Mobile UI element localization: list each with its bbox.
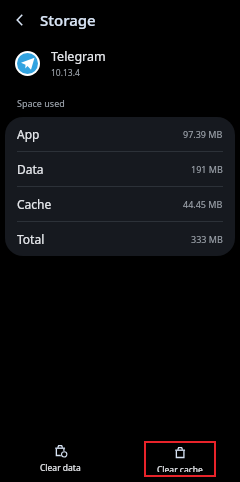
staticText: 97.39 MB bbox=[183, 128, 223, 140]
button[interactable]: Data bbox=[5, 152, 235, 186]
staticText: 333 MB bbox=[191, 233, 223, 245]
staticText: 10.13.4 bbox=[51, 67, 80, 79]
staticText: Total bbox=[17, 231, 45, 247]
staticText: Clear cache bbox=[157, 464, 203, 472]
staticText: Clear data bbox=[40, 462, 81, 474]
button[interactable]: Telegram bbox=[0, 40, 240, 86]
button[interactable]: App bbox=[5, 117, 235, 151]
button[interactable]: Clear cache bbox=[146, 443, 214, 475]
staticText: App bbox=[17, 126, 40, 142]
staticText: Storage bbox=[40, 10, 96, 30]
staticText: Telegram bbox=[51, 48, 106, 65]
staticText: Data bbox=[17, 161, 44, 177]
staticText: Cache bbox=[17, 196, 52, 212]
button[interactable]: Back bbox=[6, 6, 34, 34]
button[interactable]: Cache bbox=[5, 187, 235, 221]
button[interactable]: Clear data bbox=[25, 441, 95, 477]
staticText: 44.45 MB bbox=[183, 198, 223, 210]
button[interactable]: Total bbox=[5, 222, 235, 256]
staticText: 191 MB bbox=[191, 163, 223, 175]
staticText: Space used bbox=[17, 97, 65, 109]
